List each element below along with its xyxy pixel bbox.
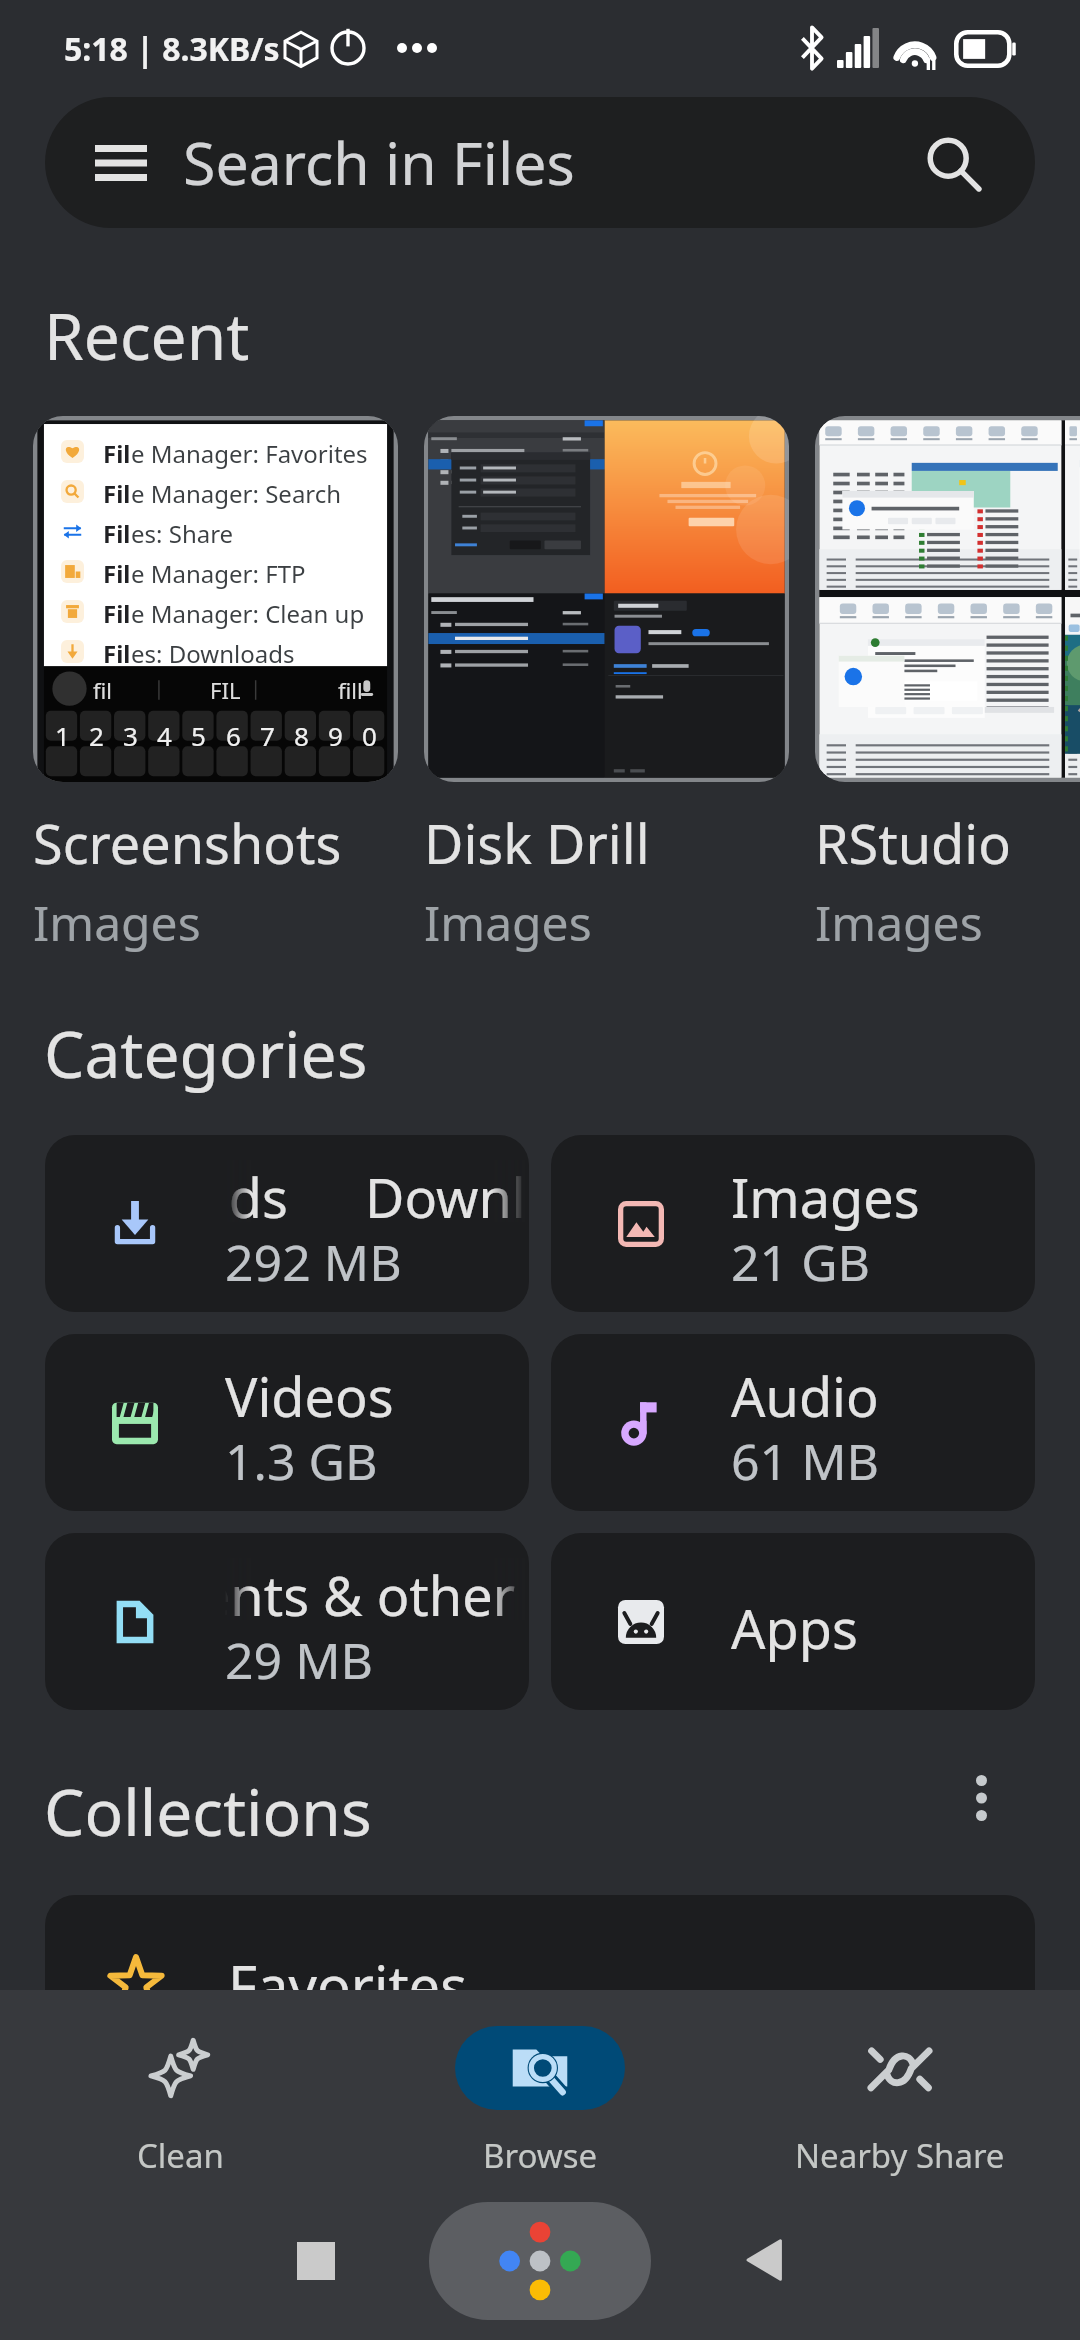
staticText: Browse bbox=[483, 2133, 598, 2178]
staticText: Fil bbox=[103, 517, 131, 550]
button[interactable]: Clean bbox=[0, 1990, 360, 2180]
staticText: Collections bbox=[44, 1768, 372, 1855]
staticText: 0 bbox=[362, 718, 377, 753]
staticText: fill bbox=[338, 675, 363, 705]
button[interactable]: Disk Drill bbox=[424, 416, 789, 955]
staticText: Disk Drill bbox=[424, 806, 650, 880]
staticText: Categories bbox=[44, 1010, 368, 1097]
staticText: Documents & other bbox=[225, 1558, 515, 1620]
staticText: Audio bbox=[731, 1359, 879, 1433]
staticText: 1.3 GB bbox=[225, 1427, 378, 1495]
staticText: 1 bbox=[55, 718, 70, 753]
staticText: 29 MB bbox=[225, 1626, 374, 1694]
staticText: FIL bbox=[210, 675, 241, 705]
staticText: Fil bbox=[103, 637, 131, 669]
button[interactable]: Downloads bbox=[45, 1135, 529, 1312]
staticText: 4 bbox=[157, 718, 172, 753]
staticText: Downloads bbox=[225, 1160, 288, 1222]
button[interactable]: Documents & other bbox=[45, 1533, 529, 1710]
staticText: Fil bbox=[103, 597, 131, 630]
button[interactable]: Videos bbox=[45, 1334, 529, 1511]
staticText: Images bbox=[424, 890, 592, 955]
button[interactable]: More options bbox=[931, 1748, 1031, 1848]
button[interactable]: Assistant bbox=[429, 2202, 651, 2320]
button[interactable]: Audio bbox=[551, 1334, 1035, 1511]
staticText: 6 bbox=[226, 718, 241, 753]
staticText: Screenshots bbox=[33, 806, 342, 880]
staticText: 5:18 | 8.3KB/s bbox=[64, 27, 280, 71]
staticText: e Manager: Search bbox=[131, 477, 342, 510]
button[interactable]: Back bbox=[736, 2230, 796, 2290]
staticText: es: Downloads bbox=[131, 637, 295, 669]
staticText: Downloads bbox=[365, 1160, 525, 1222]
staticText: e Manager: Favorites bbox=[131, 437, 368, 470]
staticText: 3 bbox=[123, 718, 138, 753]
button[interactable]: RStudio bbox=[815, 416, 1080, 955]
staticText: 21 GB bbox=[731, 1228, 871, 1296]
staticText: e Manager: FTP bbox=[131, 557, 306, 590]
staticText: Clean bbox=[137, 2133, 224, 2178]
staticText: e Manager: Clean up bbox=[131, 597, 365, 630]
button[interactable]: Nearby Share bbox=[720, 1990, 1080, 2180]
staticText: Favorites bbox=[228, 1947, 468, 2023]
staticText: RStudio bbox=[815, 806, 1011, 880]
staticText: Nearby Share bbox=[795, 2133, 1005, 2178]
button[interactable]: Browse bbox=[360, 1990, 720, 2180]
staticText: es: Share bbox=[131, 517, 234, 550]
button[interactable]: Favorites bbox=[45, 1895, 1035, 2075]
staticText: fil bbox=[93, 675, 112, 705]
button[interactable]: Fil bbox=[33, 416, 398, 955]
staticText: 292 MB bbox=[225, 1228, 402, 1296]
staticText: Search in Files bbox=[183, 122, 575, 202]
staticText: 61 MB bbox=[731, 1427, 880, 1495]
staticText: 9 bbox=[328, 718, 343, 753]
staticText: Fil bbox=[103, 557, 131, 590]
button[interactable]: Apps bbox=[551, 1533, 1035, 1710]
button[interactable]: Images bbox=[551, 1135, 1035, 1312]
staticText: Fil bbox=[103, 477, 131, 510]
staticText: Images bbox=[815, 890, 983, 955]
staticText: Images bbox=[731, 1160, 920, 1234]
staticText: Videos bbox=[225, 1359, 394, 1433]
staticText: 2 bbox=[89, 718, 104, 753]
staticText: Apps bbox=[731, 1591, 858, 1665]
staticText: Images bbox=[33, 890, 201, 955]
staticText: 5 bbox=[191, 718, 206, 753]
staticText: Fil bbox=[103, 437, 131, 470]
staticText: 7 bbox=[260, 718, 275, 753]
staticText: 8 bbox=[294, 718, 309, 753]
staticText: Recent bbox=[44, 292, 250, 379]
button[interactable]: Search in Files bbox=[45, 97, 1035, 228]
